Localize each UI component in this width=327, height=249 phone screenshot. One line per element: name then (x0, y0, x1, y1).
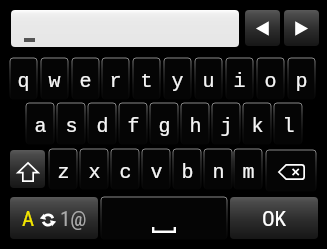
staticText: x (88, 161, 101, 184)
staticText: f (127, 115, 140, 138)
button[interactable]: Switch input mode (10, 197, 98, 239)
staticText: q (17, 70, 30, 93)
button[interactable]: y (164, 58, 191, 99)
staticText: t (140, 70, 153, 93)
button[interactable]: m (234, 149, 262, 189)
staticText: d (96, 115, 109, 138)
button[interactable]: h (181, 103, 209, 144)
button[interactable]: Backspace (266, 150, 316, 191)
staticText: A (22, 207, 35, 232)
button[interactable]: e (72, 58, 99, 99)
staticText: p (295, 70, 308, 93)
button[interactable]: a (26, 103, 54, 144)
button[interactable]: b (173, 149, 201, 189)
button[interactable]: u (195, 58, 222, 99)
button[interactable]: Space (101, 197, 227, 239)
staticText: w (48, 70, 61, 93)
staticText: g (158, 115, 171, 138)
button[interactable]: v (142, 149, 170, 189)
button[interactable]: n (204, 149, 232, 189)
staticText: v (150, 161, 163, 184)
staticText: n (212, 161, 225, 184)
button[interactable]: j (212, 103, 240, 144)
button[interactable]: Move cursor left (245, 10, 280, 46)
staticText: OK (262, 207, 287, 232)
button[interactable]: t (133, 58, 160, 99)
staticText: m (242, 161, 255, 184)
button[interactable]: x (80, 149, 108, 189)
staticText: l (282, 115, 295, 138)
button[interactable]: l (274, 103, 302, 144)
button[interactable]: s (57, 103, 85, 144)
button[interactable]: q (10, 58, 37, 99)
button[interactable] (11, 10, 239, 47)
staticText: b (181, 161, 194, 184)
staticText: h (189, 115, 202, 138)
button[interactable]: z (49, 149, 77, 189)
button[interactable]: c (111, 149, 139, 189)
button[interactable]: g (150, 103, 178, 144)
button[interactable]: Move cursor right (284, 10, 319, 46)
button[interactable]: k (243, 103, 271, 144)
button[interactable]: f (119, 103, 147, 144)
button[interactable]: o (257, 58, 284, 99)
staticText: r (109, 70, 122, 93)
staticText: a (34, 115, 47, 138)
button[interactable]: OK (230, 197, 318, 239)
staticText: o (264, 70, 277, 93)
button[interactable]: d (88, 103, 116, 144)
button[interactable]: w (41, 58, 68, 99)
staticText: s (65, 115, 78, 138)
button[interactable]: p (288, 58, 315, 99)
staticText: u (202, 70, 215, 93)
staticText: c (119, 161, 132, 184)
staticText: 1@ (60, 207, 87, 232)
staticText: e (79, 70, 92, 93)
staticText: z (57, 161, 70, 184)
staticText: k (251, 115, 264, 138)
staticText: y (171, 70, 184, 93)
staticText: j (220, 115, 233, 138)
staticText: i (233, 70, 246, 93)
button[interactable]: i (226, 58, 253, 99)
button[interactable]: r (102, 58, 129, 99)
button[interactable]: Shift (10, 150, 45, 188)
